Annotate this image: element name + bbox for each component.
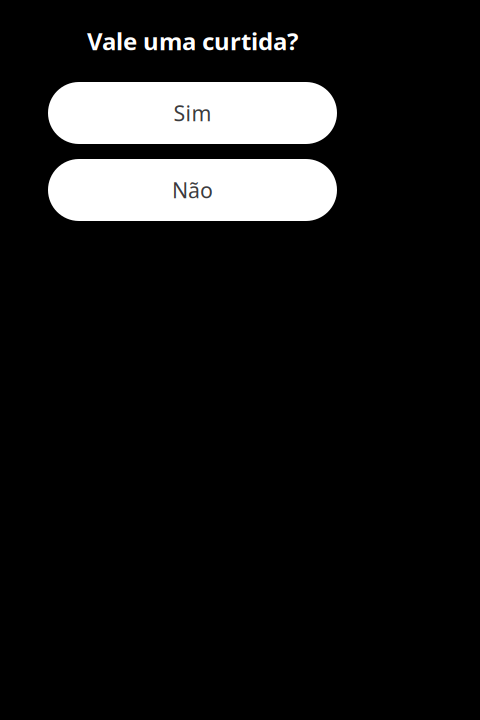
button[interactable]: Não (48, 159, 337, 221)
staticText: Não (172, 176, 213, 204)
staticText: Sim (173, 99, 211, 127)
button[interactable]: Sim (48, 82, 337, 144)
staticText: Vale uma curtida? (87, 25, 298, 57)
